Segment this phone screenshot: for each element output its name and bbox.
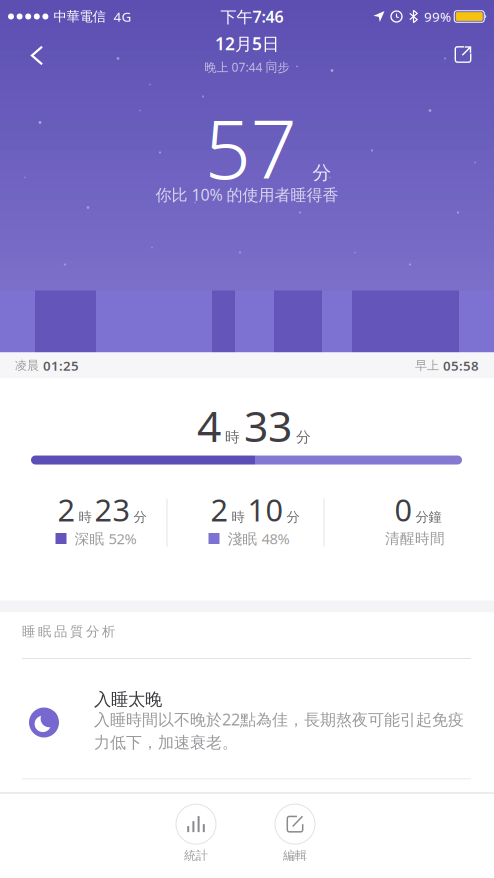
staticText: 時 — [225, 428, 240, 446]
staticText: 分 — [296, 428, 311, 446]
button[interactable] — [17, 32, 57, 79]
button[interactable]: 統計 — [166, 804, 226, 863]
staticText: 下午7:46 — [220, 6, 283, 27]
staticText: 23 — [94, 489, 130, 530]
staticText: 分 — [312, 161, 331, 184]
staticText: 深眠 52% — [74, 529, 136, 548]
staticText: 力低下，加速衰老。 — [94, 733, 238, 752]
staticText: 分 — [286, 509, 299, 525]
staticText: 57 — [204, 93, 296, 201]
button[interactable] — [442, 34, 483, 75]
staticText: 中華電信 — [53, 8, 105, 25]
staticText: 入睡時間以不晚於22點為佳，長期熬夜可能引起免疫 — [94, 708, 464, 730]
button[interactable]: 編輯 — [265, 804, 325, 863]
staticText: 編輯 — [283, 848, 307, 863]
staticText: 12月5日 — [215, 32, 279, 55]
staticText: 分 — [133, 509, 146, 525]
staticText: 4 — [197, 397, 221, 454]
staticText: 入睡太晚 — [94, 689, 162, 710]
staticText: 4G — [113, 8, 131, 25]
staticText: 清醒時間 — [385, 529, 445, 547]
staticText: 睡眠品質分析 — [22, 623, 115, 640]
staticText: 淺眠 48% — [227, 529, 289, 548]
staticText: 凌晨 — [15, 358, 39, 373]
staticText: 10 — [247, 489, 283, 530]
staticText: 99% — [424, 8, 451, 25]
staticText: 05:58 — [443, 357, 479, 374]
staticText: 33 — [244, 397, 292, 454]
staticText: 0 — [394, 489, 412, 530]
staticText: 2 — [210, 489, 228, 530]
staticText: 早上 — [415, 358, 439, 373]
staticText: 你比 10% 的使用者睡得香 — [155, 184, 338, 205]
staticText: 時 — [231, 509, 244, 525]
staticText: 01:25 — [43, 357, 79, 374]
staticText: 2 — [57, 489, 75, 530]
staticText: 統計 — [184, 848, 208, 863]
staticText: 時 — [78, 509, 91, 525]
staticText: 分鐘 — [415, 509, 441, 525]
staticText: 晚上 07:44 同步 — [204, 59, 289, 75]
